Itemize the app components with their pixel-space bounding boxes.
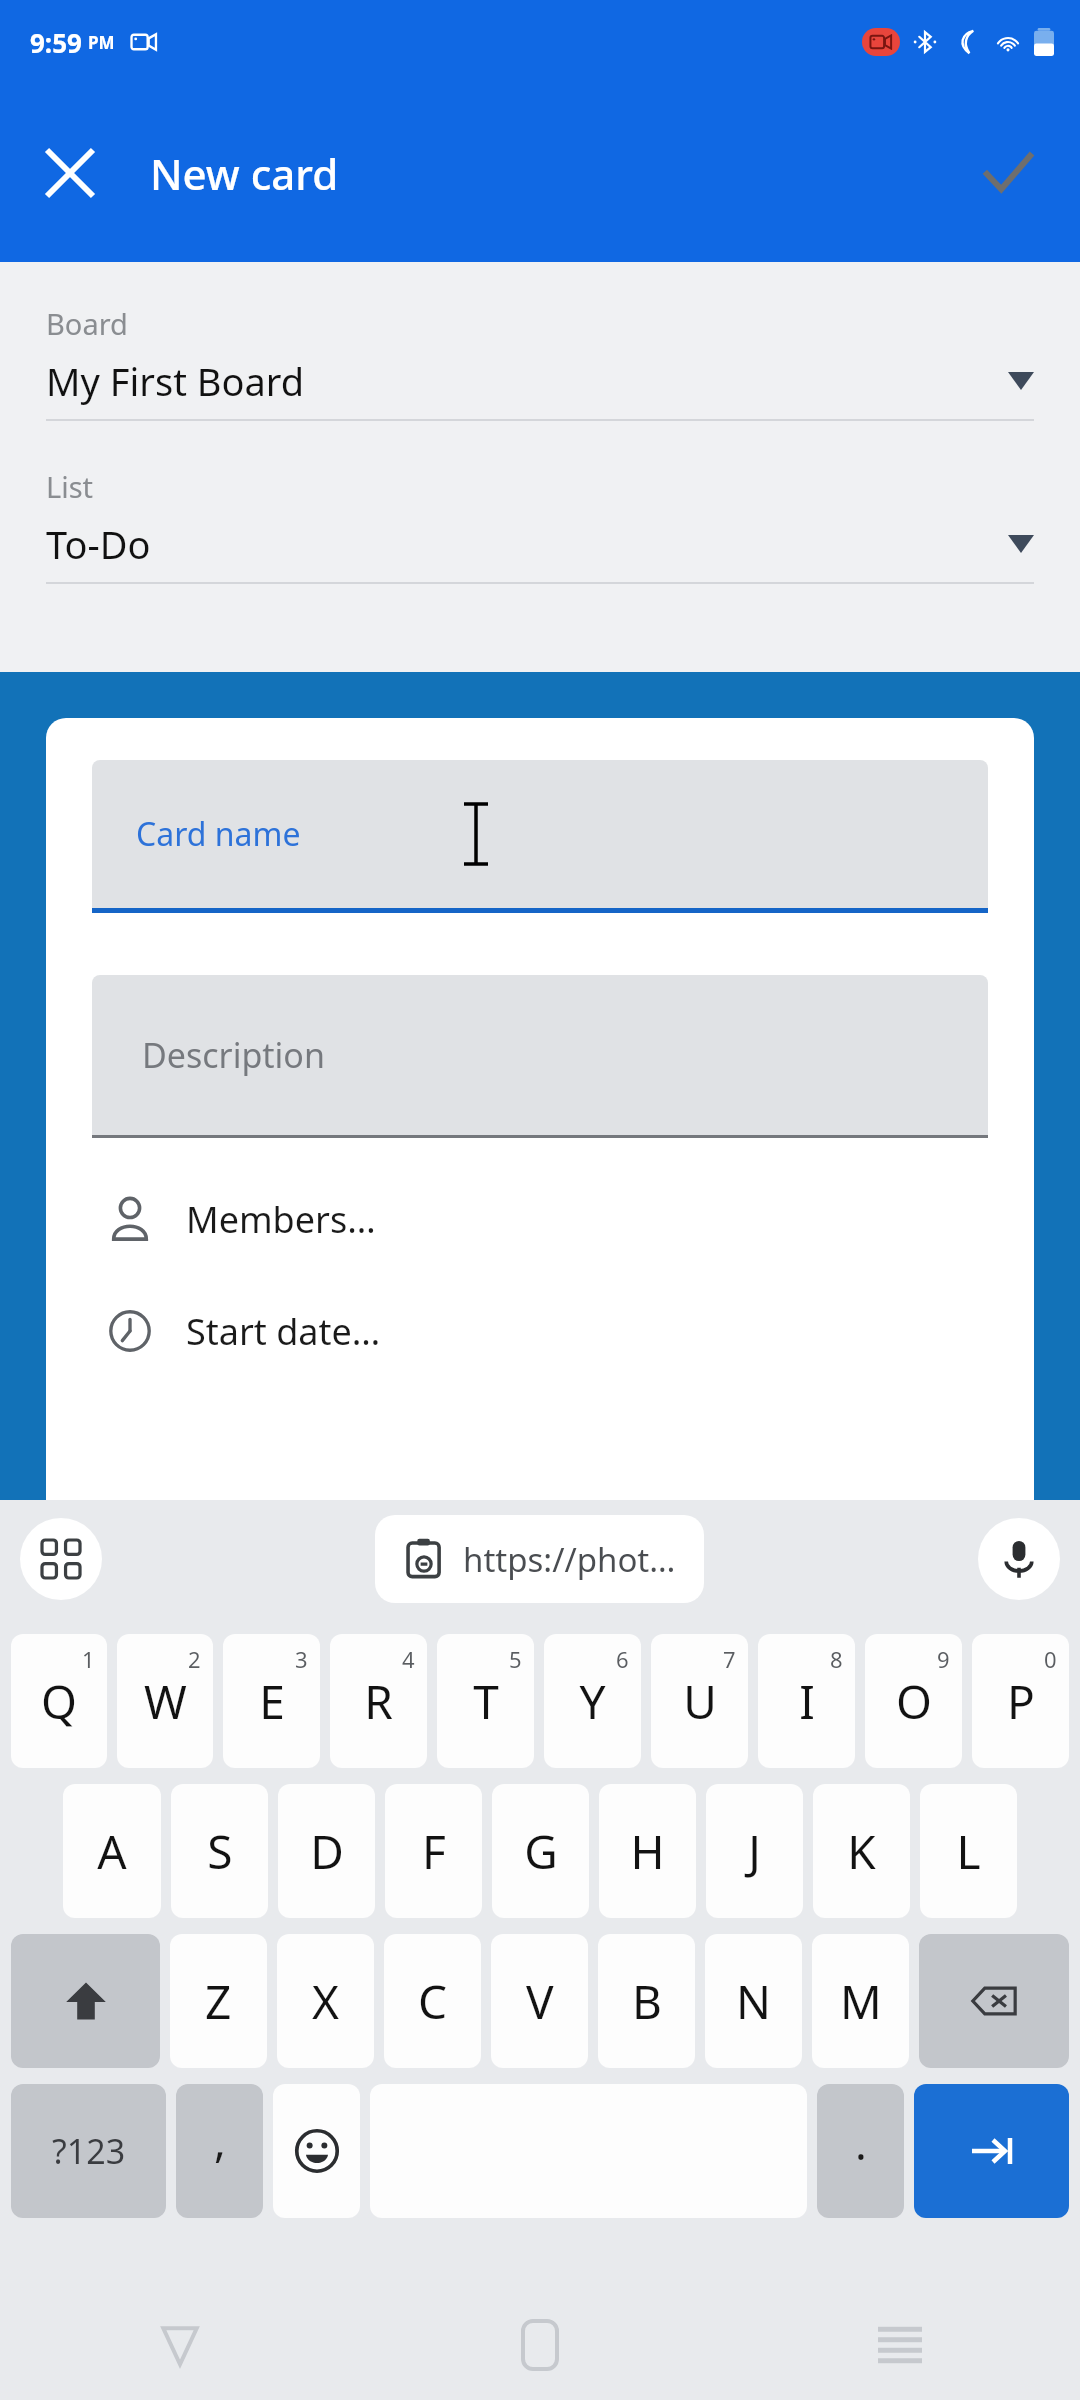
button[interactable]: Board — [46, 304, 1034, 421]
button[interactable]: Y — [544, 1634, 641, 1768]
staticText: To-Do — [46, 518, 1008, 570]
staticText: 8 — [830, 1644, 843, 1674]
button[interactable]: Emoji — [273, 2084, 360, 2218]
button[interactable]: P — [972, 1634, 1069, 1768]
staticText: M — [840, 1970, 882, 2033]
button[interactable]: D — [278, 1784, 375, 1918]
button[interactable]: U — [651, 1634, 748, 1768]
button[interactable]: E — [223, 1634, 320, 1768]
staticText: ?123 — [52, 2128, 126, 2174]
button[interactable]: J — [706, 1784, 803, 1918]
button[interactable]: Voice input — [978, 1518, 1060, 1600]
button[interactable]: B — [598, 1934, 695, 2068]
button[interactable]: Shift — [11, 1934, 160, 2068]
button[interactable]: ?123 — [11, 2084, 166, 2218]
button[interactable]: Description — [92, 975, 988, 1138]
staticText: Z — [205, 1970, 232, 2033]
button[interactable]: Start date… — [92, 1288, 988, 1374]
button[interactable]: , — [176, 2084, 263, 2218]
button[interactable]: O — [865, 1634, 962, 1768]
staticText: 5 — [509, 1644, 522, 1674]
button[interactable]: M — [812, 1934, 909, 2068]
button[interactable]: Home — [360, 2290, 720, 2400]
button[interactable]: G — [492, 1784, 589, 1918]
staticText: List — [46, 467, 94, 506]
button[interactable]: L — [920, 1784, 1017, 1918]
staticText: W — [144, 1670, 187, 1733]
button[interactable]: Card name — [92, 760, 988, 913]
button[interactable]: V — [491, 1934, 588, 2068]
staticText: Y — [579, 1670, 606, 1733]
staticText: Board — [46, 304, 128, 343]
button[interactable]: X — [277, 1934, 374, 2068]
button[interactable]: Backspace — [919, 1934, 1069, 2068]
button[interactable]: Q — [11, 1634, 107, 1768]
staticText: 0 — [1044, 1644, 1057, 1674]
staticText: 9 — [937, 1644, 950, 1674]
button[interactable]: Save — [970, 135, 1046, 211]
staticText: 7 — [723, 1644, 736, 1674]
button[interactable]: Back — [0, 2290, 360, 2400]
staticText: D — [310, 1820, 344, 1883]
staticText: Card name — [136, 812, 301, 856]
staticText: P — [1007, 1670, 1035, 1733]
button[interactable]: A — [63, 1784, 161, 1918]
staticText: V — [526, 1970, 554, 2033]
staticText: O — [896, 1670, 932, 1733]
button[interactable]: C — [384, 1934, 481, 2068]
staticText: 9:59 — [30, 25, 82, 60]
staticText: 6 — [616, 1644, 629, 1674]
staticText: B — [632, 1970, 662, 2033]
button[interactable]: S — [171, 1784, 268, 1918]
button[interactable]: Recents — [720, 2290, 1080, 2400]
button[interactable]: R — [330, 1634, 427, 1768]
staticText: K — [847, 1820, 876, 1883]
staticText: E — [259, 1670, 285, 1733]
staticText: H — [630, 1820, 665, 1883]
staticText: J — [748, 1820, 761, 1883]
staticText: Members… — [186, 1195, 376, 1244]
button[interactable]: Keyboard options — [20, 1518, 102, 1600]
staticText: 3 — [295, 1644, 308, 1674]
staticText: 4 — [402, 1644, 415, 1674]
staticText: I — [799, 1670, 815, 1733]
button[interactable]: Close — [34, 137, 106, 209]
staticText: 1 — [82, 1644, 95, 1674]
staticText: A — [97, 1820, 127, 1883]
staticText: Q — [41, 1670, 77, 1733]
staticText: R — [364, 1670, 393, 1733]
button[interactable]: I — [758, 1634, 855, 1768]
staticText: New card — [150, 145, 339, 202]
button[interactable]: List — [46, 467, 1034, 584]
staticText: 2 — [188, 1644, 201, 1674]
button[interactable]: Z — [170, 1934, 267, 2068]
staticText: Start date… — [186, 1307, 381, 1356]
staticText: . — [855, 2113, 867, 2173]
staticText: U — [683, 1670, 717, 1733]
staticText: PM — [88, 31, 115, 54]
staticText: X — [312, 1970, 339, 2033]
button[interactable]: W — [117, 1634, 213, 1768]
button[interactable]: T — [437, 1634, 534, 1768]
staticText: My First Board — [46, 355, 1008, 407]
button[interactable]: https://phot… — [375, 1515, 704, 1603]
staticText: S — [207, 1820, 233, 1883]
staticText: https://phot… — [463, 1537, 676, 1582]
staticText: G — [524, 1820, 558, 1883]
button[interactable]: F — [385, 1784, 482, 1918]
button[interactable]: H — [599, 1784, 696, 1918]
button[interactable]: N — [705, 1934, 802, 2068]
staticText: , — [214, 2110, 226, 2170]
staticText: F — [422, 1820, 446, 1883]
staticText: Description — [142, 1032, 325, 1078]
staticText: N — [736, 1970, 771, 2033]
staticText: C — [418, 1970, 448, 2033]
button[interactable]: Next — [914, 2084, 1069, 2218]
button[interactable]: K — [813, 1784, 910, 1918]
staticText: L — [956, 1820, 981, 1883]
staticText: T — [473, 1670, 499, 1733]
button[interactable]: . — [817, 2084, 904, 2218]
button[interactable]: Members… — [92, 1176, 988, 1262]
